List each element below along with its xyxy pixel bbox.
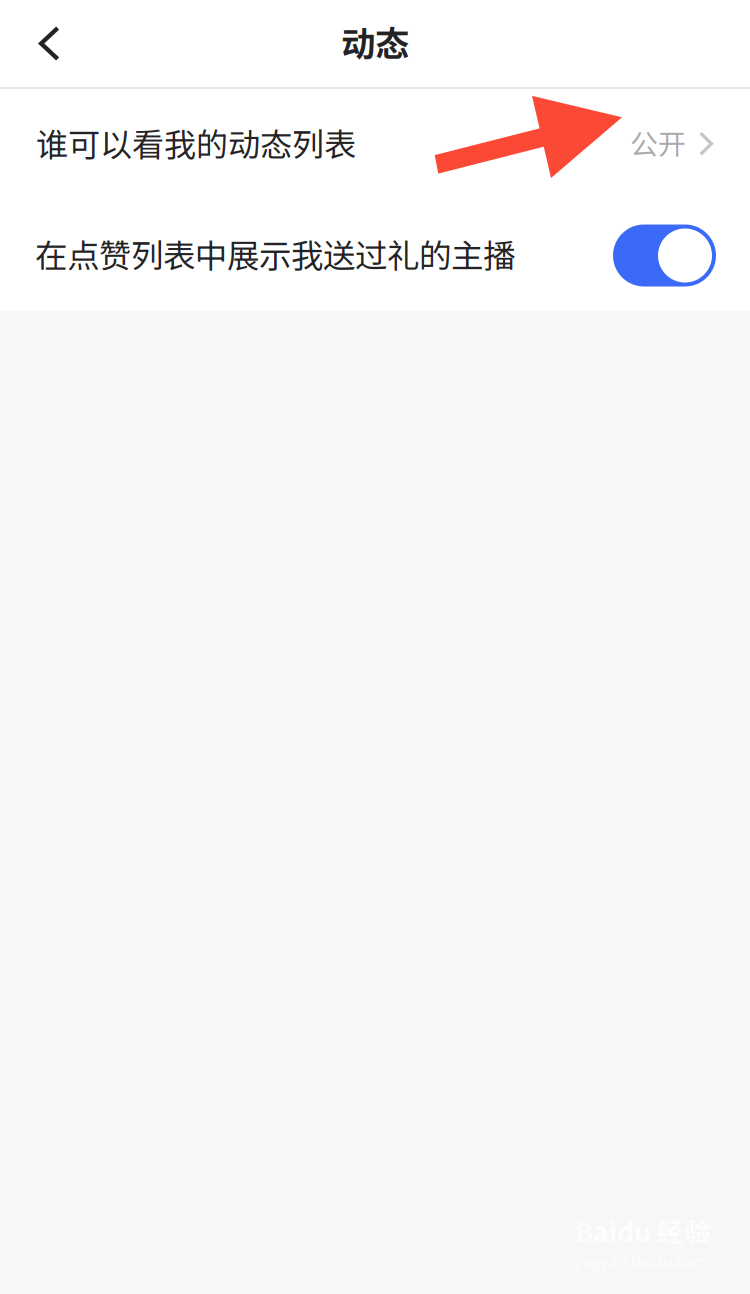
button[interactable]: Back xyxy=(0,0,98,87)
staticText: 在点赞列表中展示我送过礼的主播 xyxy=(35,230,515,277)
button[interactable]: 谁可以看我的动态列表 xyxy=(0,89,750,200)
staticText: 公开 xyxy=(630,122,686,163)
staticText: 谁可以看我的动态列表 xyxy=(36,119,356,166)
button[interactable]: 在点赞列表中展示我送过礼的主播 xyxy=(613,224,716,286)
staticText: 动态 xyxy=(341,17,409,66)
